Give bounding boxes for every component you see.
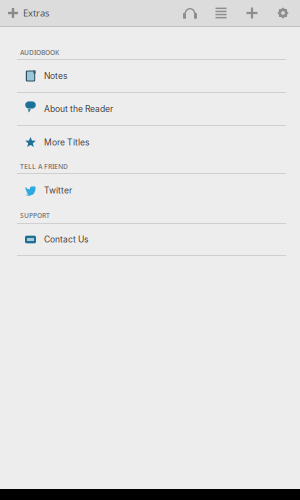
staticText: Twitter [44,185,72,196]
button[interactable]: Table of contents [210,0,232,26]
staticText: About the Reader [44,104,113,114]
button[interactable]: About the Reader [17,93,286,126]
staticText: TELL A FRIEND [20,162,68,171]
staticText: Contact Us [44,234,89,245]
button[interactable]: Contact Us [17,224,286,256]
staticText: Notes [44,71,68,81]
staticText: AUDIOBOOK [20,48,59,57]
button[interactable]: Audio player [179,0,201,26]
button[interactable]: Settings [272,0,294,26]
button[interactable]: Notes [17,60,286,93]
staticText: Extras [23,7,49,19]
button[interactable]: Twitter [17,174,286,207]
button[interactable]: Extras [0,0,55,26]
staticText: SUPPORT [20,211,50,220]
button[interactable]: More Titles [17,126,286,159]
button[interactable]: Add bookmark [241,0,263,26]
staticText: More Titles [44,137,90,148]
